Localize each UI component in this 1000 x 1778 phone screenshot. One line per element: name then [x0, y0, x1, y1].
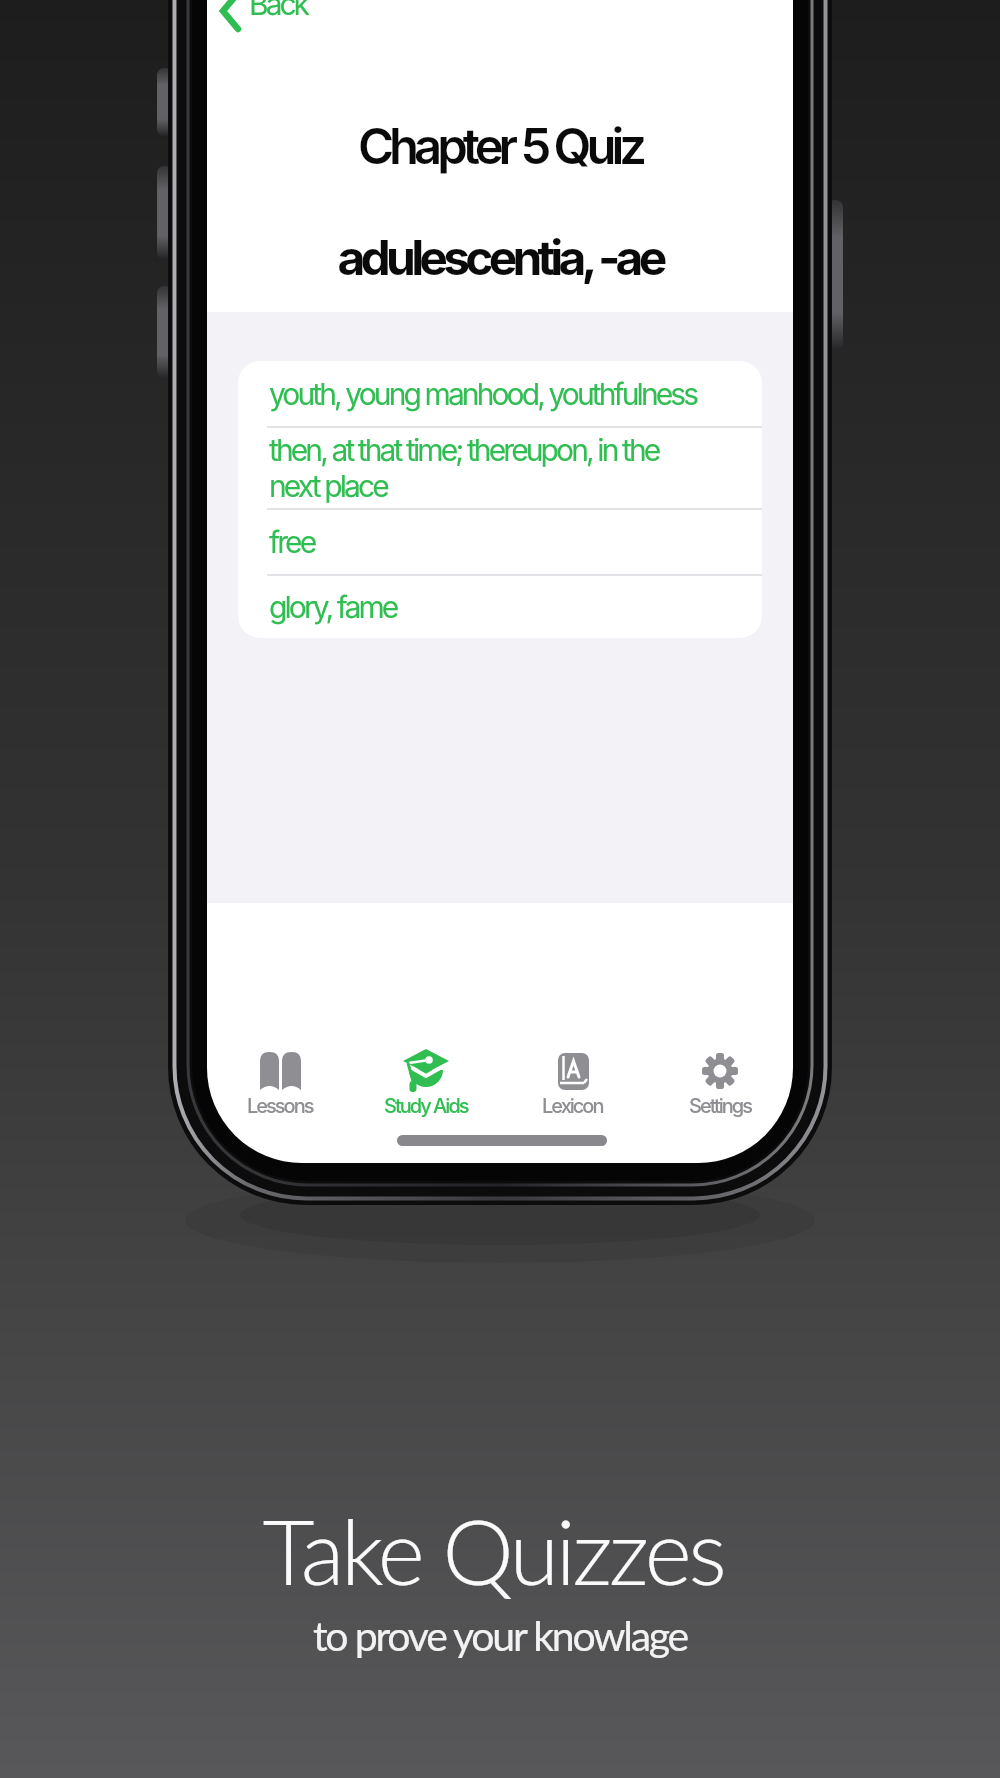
staticText: Take Quizzes [0, 1496, 993, 1604]
staticText: Lexicon [542, 1094, 603, 1118]
staticText: Back [249, 0, 308, 22]
button[interactable]: Settings [646, 1048, 793, 1126]
staticText: Settings [689, 1094, 751, 1118]
button[interactable]: youth, young manhood, youthfulness [238, 361, 762, 426]
staticText: free [269, 524, 315, 560]
staticText: adulescentia, -ae [207, 228, 793, 286]
staticText: Chapter 5 Quiz [207, 117, 793, 176]
button[interactable]: Study Aids [353, 1048, 499, 1126]
button[interactable]: glory, fame [238, 576, 762, 638]
staticText: Study Aids [384, 1094, 468, 1118]
button[interactable]: Lessons [207, 1048, 353, 1126]
staticText: glory, fame [269, 589, 397, 625]
button[interactable]: Back [215, 0, 335, 50]
staticText: to prove your knowlage [0, 1611, 1000, 1660]
button[interactable]: then, at that time; thereupon, in the [238, 428, 762, 508]
button[interactable]: free [238, 510, 762, 574]
staticText: next place [269, 468, 387, 504]
staticText: then, at that time; thereupon, in the [269, 432, 659, 468]
staticText: youth, young manhood, youthfulness [269, 376, 697, 412]
button[interactable]: Lexicon [499, 1048, 646, 1126]
staticText: Lessons [247, 1094, 313, 1118]
